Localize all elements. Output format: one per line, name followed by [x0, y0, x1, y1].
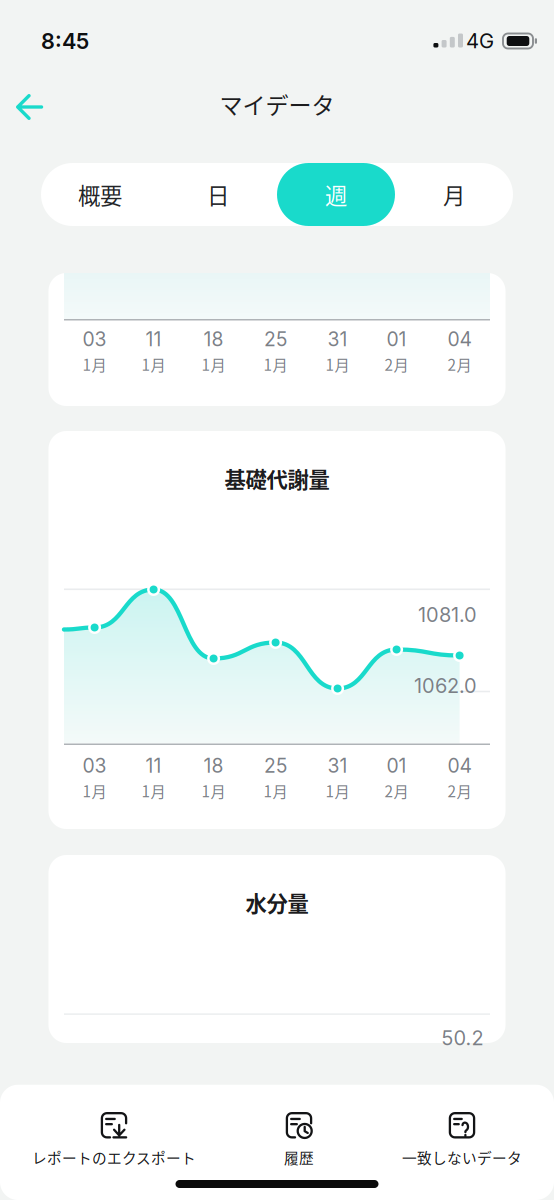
staticText: 1月 [142, 353, 166, 375]
staticText: 2月 [448, 779, 472, 802]
staticText: 1月 [326, 779, 350, 802]
staticText: 01 [387, 754, 407, 777]
staticText: 概要 [78, 178, 122, 211]
staticText: 18 [204, 754, 224, 777]
button[interactable]: 戻る [0, 78, 60, 130]
staticText: 03 [83, 327, 107, 351]
staticText: 25 [264, 754, 287, 777]
staticText: レポートのエクスポート [32, 1147, 196, 1168]
staticText: 1062.0 [414, 674, 477, 698]
staticText: マイデータ [219, 87, 334, 121]
button[interactable]: 概要 [41, 163, 159, 226]
staticText: 2月 [385, 779, 409, 802]
staticText: 18 [204, 327, 224, 351]
staticText: 1月 [202, 353, 226, 375]
staticText: 04 [448, 327, 472, 351]
staticText: 1月 [264, 353, 288, 375]
staticText: 1月 [83, 779, 107, 802]
staticText: 履歴 [284, 1147, 314, 1168]
staticText: 11 [146, 327, 162, 351]
button[interactable]: レポートのエクスポート [32, 1112, 196, 1168]
staticText: 1月 [202, 779, 226, 802]
staticText: 01 [387, 327, 407, 351]
staticText: 週 [325, 178, 347, 211]
button[interactable]: 週 [277, 163, 395, 226]
staticText: 4G [466, 29, 494, 53]
staticText: 日 [207, 178, 229, 211]
staticText: 50.2 [441, 1026, 483, 1050]
staticText: 1月 [326, 353, 350, 375]
staticText: 11 [146, 754, 162, 777]
staticText: 2月 [448, 353, 472, 375]
staticText: 月 [443, 178, 465, 211]
staticText: 基礎代謝量 [224, 463, 329, 494]
staticText: 31 [328, 754, 348, 777]
staticText: 2月 [385, 353, 409, 375]
staticText: 25 [264, 327, 287, 351]
button[interactable]: 履歴 [284, 1112, 314, 1168]
staticText: 水分量 [245, 887, 308, 918]
staticText: 31 [328, 327, 348, 351]
staticText: 1月 [142, 779, 166, 802]
staticText: 8:45 [41, 28, 89, 54]
staticText: 03 [83, 754, 107, 777]
button[interactable]: 日 [159, 163, 277, 226]
button[interactable]: 一致しないデータ [402, 1112, 522, 1168]
staticText: 1月 [83, 353, 107, 375]
staticText: 一致しないデータ [402, 1147, 522, 1168]
staticText: 1081.0 [418, 602, 477, 627]
staticText: 04 [448, 754, 472, 777]
button[interactable]: 月 [395, 163, 513, 226]
staticText: 1月 [264, 779, 288, 802]
